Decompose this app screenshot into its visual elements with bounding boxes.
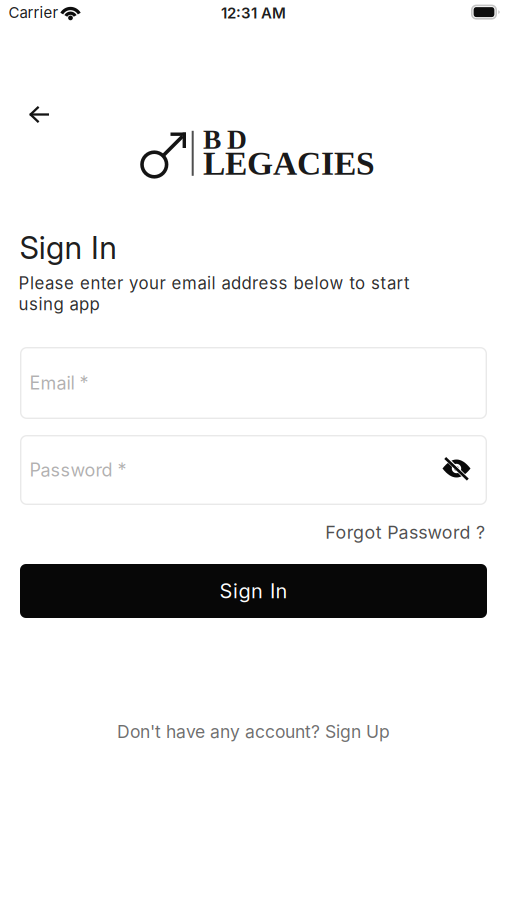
button[interactable]: Sign In bbox=[20, 564, 487, 618]
staticText: using app bbox=[18, 294, 99, 314]
button[interactable]: Forgot Password ? bbox=[325, 521, 485, 543]
staticText: Please enter your email address below to… bbox=[18, 273, 409, 293]
staticText: Email * bbox=[29, 372, 88, 394]
staticText: 12:31 AM bbox=[221, 4, 286, 22]
staticText: Password * bbox=[29, 459, 126, 481]
staticText: Sign In bbox=[19, 229, 117, 266]
button[interactable]: Show password bbox=[442, 458, 471, 479]
button[interactable]: Don't have any account? Sign Up bbox=[117, 721, 390, 742]
staticText: LEGACIES bbox=[203, 145, 375, 182]
staticText: Don't have any account? Sign Up bbox=[117, 721, 390, 742]
button[interactable]: Back bbox=[20, 98, 57, 131]
staticText: B D bbox=[203, 124, 247, 155]
staticText: Forgot Password ? bbox=[325, 521, 485, 543]
staticText: Sign In bbox=[219, 579, 287, 603]
staticText: Carrier bbox=[8, 3, 58, 22]
